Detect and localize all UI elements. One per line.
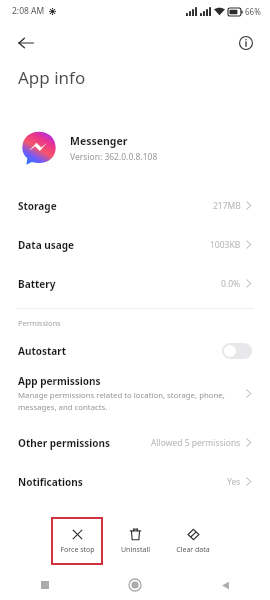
staticText: Version: 362.0.0.8.108 — [70, 151, 158, 163]
button[interactable]: Battery — [0, 264, 270, 303]
button[interactable]: Clear data — [168, 518, 218, 564]
staticText: Force stop — [60, 545, 95, 555]
button[interactable]: Back — [180, 570, 270, 600]
staticText: Autostart — [18, 344, 67, 358]
staticText: Battery — [18, 277, 56, 291]
button[interactable]: Notifications — [0, 462, 270, 501]
staticText: Notifications — [18, 475, 83, 489]
staticText: 1003KB — [210, 239, 241, 251]
button[interactable]: Recents — [0, 570, 90, 600]
staticText: Clear data — [176, 545, 210, 555]
button[interactable]: Uninstall — [110, 518, 160, 564]
button[interactable]: Force stop — [52, 518, 102, 564]
staticText: Storage — [18, 199, 57, 213]
staticText: Uninstall — [121, 545, 150, 555]
button[interactable]: Data usage — [0, 225, 270, 264]
button[interactable]: Other permissions — [0, 423, 270, 462]
staticText: 0.0% — [221, 278, 241, 290]
staticText: Allowed 5 permissions — [151, 437, 241, 449]
button[interactable]: App info help — [231, 28, 261, 58]
staticText: 2:08 AM — [12, 5, 45, 17]
staticText: App info — [18, 66, 86, 89]
button[interactable]: Autostart — [0, 336, 270, 366]
staticText: Other permissions — [18, 436, 111, 450]
staticText: Yes — [227, 476, 241, 488]
button[interactable]: Storage — [0, 186, 270, 225]
button[interactable]: Back — [10, 27, 42, 59]
button[interactable]: Home — [90, 570, 180, 600]
staticText: 217MB — [213, 200, 241, 212]
staticText: Permissions — [18, 318, 61, 328]
staticText: App permissions — [18, 374, 101, 388]
staticText: 66% — [245, 6, 261, 17]
button[interactable]: App permissions — [0, 372, 270, 414]
staticText: Manage permissions related to location, … — [18, 390, 225, 412]
staticText: Messenger — [70, 134, 128, 148]
staticText: Data usage — [18, 238, 75, 252]
button[interactable]: Autostart toggle — [222, 343, 252, 359]
